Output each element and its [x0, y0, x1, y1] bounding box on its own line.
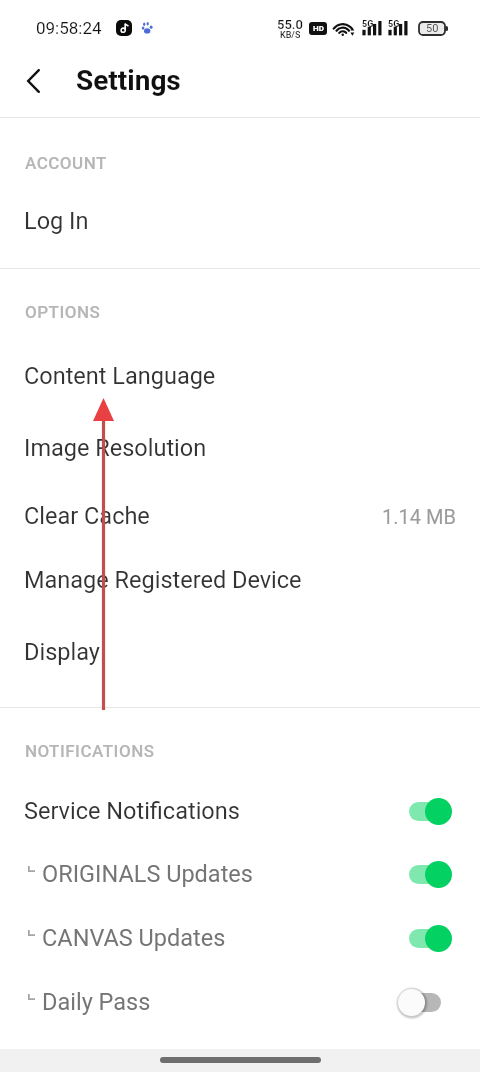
staticText: Daily Pass — [42, 988, 151, 1016]
staticText: Settings — [76, 64, 181, 97]
staticText: Log In — [24, 207, 89, 235]
staticText: Display — [24, 638, 100, 666]
staticText: ACCOUNT — [25, 153, 107, 173]
staticText: Image Resolution — [24, 434, 207, 462]
button[interactable]: Log In — [0, 193, 480, 249]
staticText: 5G — [362, 19, 374, 30]
staticText: NOTIFICATIONS — [25, 741, 155, 761]
staticText: OPTIONS — [25, 302, 101, 322]
button[interactable]: Service Notifications — [0, 783, 480, 839]
staticText: ORIGINALS Updates — [42, 860, 253, 888]
button[interactable]: Toggle — [398, 859, 452, 889]
staticText: Manage Registered Device — [24, 566, 302, 594]
button[interactable]: Daily Pass — [0, 974, 480, 1030]
staticText: HD — [313, 24, 324, 33]
button[interactable]: Manage Registered Device — [0, 552, 480, 608]
staticText: 55.0 — [277, 17, 303, 32]
staticText: 50 — [426, 22, 439, 35]
button[interactable]: Content Language — [0, 348, 480, 404]
button[interactable]: Toggle — [398, 987, 452, 1017]
staticText: KB/S — [280, 30, 301, 41]
staticText: 1.14 MB — [382, 505, 456, 528]
button[interactable]: Display — [0, 624, 480, 680]
button[interactable]: Back — [9, 57, 57, 105]
staticText: CANVAS Updates — [42, 924, 226, 952]
button[interactable]: ORIGINALS Updates — [0, 846, 480, 902]
button[interactable]: Clear Cache — [0, 488, 480, 544]
button[interactable]: Toggle — [398, 796, 452, 826]
button[interactable]: Toggle — [398, 923, 452, 953]
staticText: Service Notifications — [24, 797, 240, 825]
staticText: Content Language — [24, 362, 216, 390]
staticText: 5G — [388, 19, 400, 30]
button[interactable]: Image Resolution — [0, 420, 480, 476]
staticText: Clear Cache — [24, 502, 150, 530]
staticText: 09:58:24 — [36, 18, 102, 38]
button[interactable]: CANVAS Updates — [0, 910, 480, 966]
